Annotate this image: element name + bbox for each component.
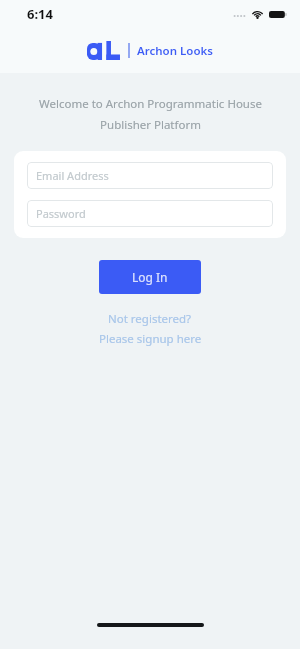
button[interactable]: Log In [99, 260, 201, 294]
button[interactable]: Not registered? [0, 311, 300, 347]
staticText: 6:14 [27, 5, 53, 23]
staticText: Email Address [36, 168, 109, 183]
button[interactable]: Email Address [27, 162, 273, 189]
staticText: Publisher Platform [100, 117, 201, 133]
staticText: Archon Looks [137, 43, 213, 59]
staticText: Welcome to Archon Programmatic House [39, 96, 262, 112]
staticText: Password [36, 206, 86, 221]
button[interactable]: Password [27, 200, 273, 227]
staticText: Not registered? [108, 311, 192, 327]
staticText: Log In [132, 269, 168, 285]
staticText: Please signup here [99, 331, 202, 347]
